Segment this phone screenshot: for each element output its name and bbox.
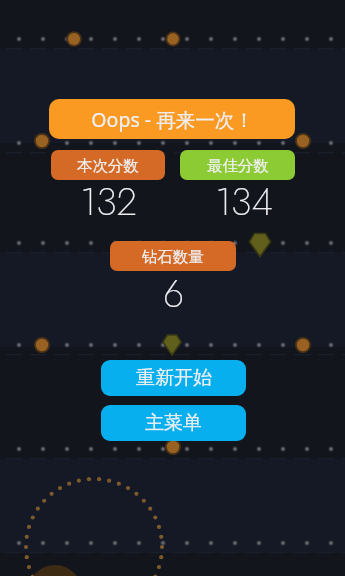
staticText: Oops - 再来一次！ [91,106,254,133]
staticText: 钻石数量 [142,247,204,266]
staticText: 134 [215,175,273,229]
button[interactable]: Oops - 再来一次！ [49,99,295,139]
staticText: 重新开始 [136,366,212,390]
button[interactable]: 钻石数量 [110,241,236,271]
staticText: 本次分数 [77,156,139,175]
button[interactable]: 本次分数 [51,150,165,180]
button[interactable]: 最佳分数 [180,150,295,180]
staticText: 6 [163,267,184,321]
button[interactable]: 重新开始 [101,360,246,396]
staticText: 132 [80,175,137,229]
staticText: 最佳分数 [207,156,269,175]
staticText: 主菜单 [145,411,202,435]
button[interactable]: 主菜单 [101,405,246,441]
